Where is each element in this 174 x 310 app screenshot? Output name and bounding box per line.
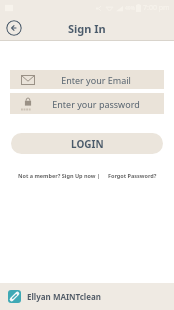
button[interactable]: Ellyan MAINTclean: [0, 283, 174, 310]
button[interactable]: Forgot Password?: [108, 172, 157, 179]
staticText: Ellyan MAINTclean: [27, 291, 101, 302]
button[interactable]: Enter your Email: [10, 70, 164, 89]
button[interactable]: Not a member? Sign Up now |: [18, 172, 101, 179]
staticText: Not a member? Sign Up now |: [18, 172, 101, 179]
staticText: Forgot Password?: [108, 172, 157, 179]
staticText: Enter your password: [52, 98, 140, 110]
button[interactable]: LOGIN: [11, 133, 163, 154]
staticText: LOGIN: [71, 137, 104, 151]
staticText: Sign In: [68, 21, 106, 36]
staticText: Enter your Email: [61, 74, 131, 86]
button[interactable]: Enter your password: [10, 93, 164, 114]
button[interactable]: Back: [6, 20, 22, 36]
